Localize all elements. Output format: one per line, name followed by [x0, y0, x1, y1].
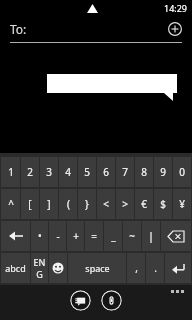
button[interactable]: + [67, 221, 84, 251]
button[interactable]: 7 [116, 157, 134, 187]
staticText: € [141, 197, 147, 211]
staticText: space [85, 262, 110, 274]
staticText: } [85, 197, 89, 211]
button[interactable]: = [85, 221, 103, 251]
button[interactable]: ENG [31, 253, 48, 283]
button[interactable]: 3 [40, 157, 58, 187]
button[interactable]: > [116, 189, 134, 219]
button[interactable]: 5 [78, 157, 96, 187]
staticText: | [148, 229, 154, 243]
staticText: $ [160, 197, 166, 211]
button[interactable]: More options [171, 290, 184, 293]
button[interactable]: 2 [21, 157, 39, 187]
button[interactable]: [ [21, 189, 39, 219]
staticText: • [38, 229, 42, 243]
button[interactable]: • [31, 221, 48, 251]
staticText: 9 [160, 165, 166, 179]
staticText: ( [67, 197, 70, 211]
button[interactable]: 0 [173, 157, 191, 187]
button[interactable]: Emoji [49, 253, 67, 283]
staticText: ENG [31, 256, 48, 280]
staticText: ¥ [179, 197, 185, 211]
button[interactable]: $ [154, 189, 172, 219]
button[interactable]: . [146, 253, 164, 283]
button[interactable]: ( [59, 189, 77, 219]
button[interactable]: | [142, 221, 160, 251]
button[interactable]: Shift [1, 221, 30, 251]
button[interactable]: 9 [154, 157, 172, 187]
staticText: > [122, 197, 128, 211]
staticText: 4 [65, 165, 71, 179]
staticText: = [91, 229, 97, 243]
button[interactable]: 1 [1, 157, 20, 187]
staticText: abcd [5, 262, 26, 274]
staticText: ] [47, 197, 51, 211]
staticText: ^ [8, 197, 14, 211]
button[interactable]: ^ [1, 189, 20, 219]
staticText: 1 [8, 165, 14, 179]
staticText: - [56, 229, 60, 243]
button[interactable]: _ [104, 221, 122, 251]
button[interactable]: ~ [123, 221, 141, 251]
button[interactable]: 6 [97, 157, 115, 187]
button[interactable]: , [127, 253, 145, 283]
button[interactable]: Send message [70, 290, 91, 311]
staticText: 14:29 [164, 2, 188, 14]
button[interactable]: 4 [59, 157, 77, 187]
button[interactable]: Attach [101, 290, 122, 311]
button[interactable]: < [97, 189, 115, 219]
button[interactable]: Add recipient [166, 20, 184, 38]
button[interactable]: Backspace [161, 221, 191, 251]
button[interactable]: 8 [135, 157, 153, 187]
button[interactable]: abcd [1, 253, 30, 283]
button[interactable]: Enter [165, 253, 191, 283]
staticText: 8 [141, 165, 147, 179]
button[interactable]: } [78, 189, 96, 219]
button[interactable]: ¥ [173, 189, 191, 219]
staticText: 0 [179, 165, 185, 179]
staticText: 7 [122, 165, 128, 179]
button[interactable]: € [135, 189, 153, 219]
staticText: 6 [103, 165, 109, 179]
button[interactable]: ] [40, 189, 58, 219]
staticText: ~ [129, 229, 135, 243]
staticText: [ [28, 197, 32, 211]
staticText: 3 [46, 165, 52, 179]
staticText: 5 [84, 165, 90, 179]
staticText: To: [10, 21, 27, 37]
button[interactable]: - [49, 221, 66, 251]
staticText: 2 [27, 165, 33, 179]
staticText: < [103, 197, 109, 211]
button[interactable]: space [68, 253, 126, 283]
staticText: + [73, 229, 79, 243]
staticText: , [135, 261, 138, 275]
staticText: . [154, 261, 157, 275]
staticText: _ [111, 229, 116, 243]
